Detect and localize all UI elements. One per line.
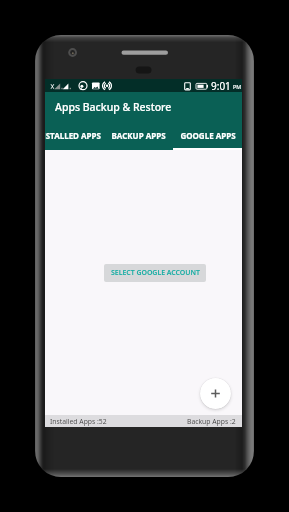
staticText: Backup Apps :2 — [187, 417, 236, 426]
staticText: Installed Apps :52 — [50, 417, 107, 426]
button[interactable]: GOOGLE APPS — [173, 130, 242, 145]
staticText: PM — [233, 83, 242, 90]
button[interactable]: BACKUP APPS — [103, 130, 173, 145]
staticText: SELECT GOOGLE ACCOUNT — [111, 268, 200, 278]
button[interactable]: Add backup — [200, 378, 231, 409]
button[interactable]: INSTALLED APPS — [45, 130, 103, 145]
staticText: BACKUP APPS — [111, 130, 166, 141]
staticText: 9:01 — [211, 79, 231, 92]
staticText: INSTALLED APPS — [45, 130, 101, 141]
staticText: Apps Backup & Restore — [55, 100, 172, 114]
button[interactable]: SELECT GOOGLE ACCOUNT — [104, 264, 206, 282]
staticText: GOOGLE APPS — [180, 130, 236, 141]
